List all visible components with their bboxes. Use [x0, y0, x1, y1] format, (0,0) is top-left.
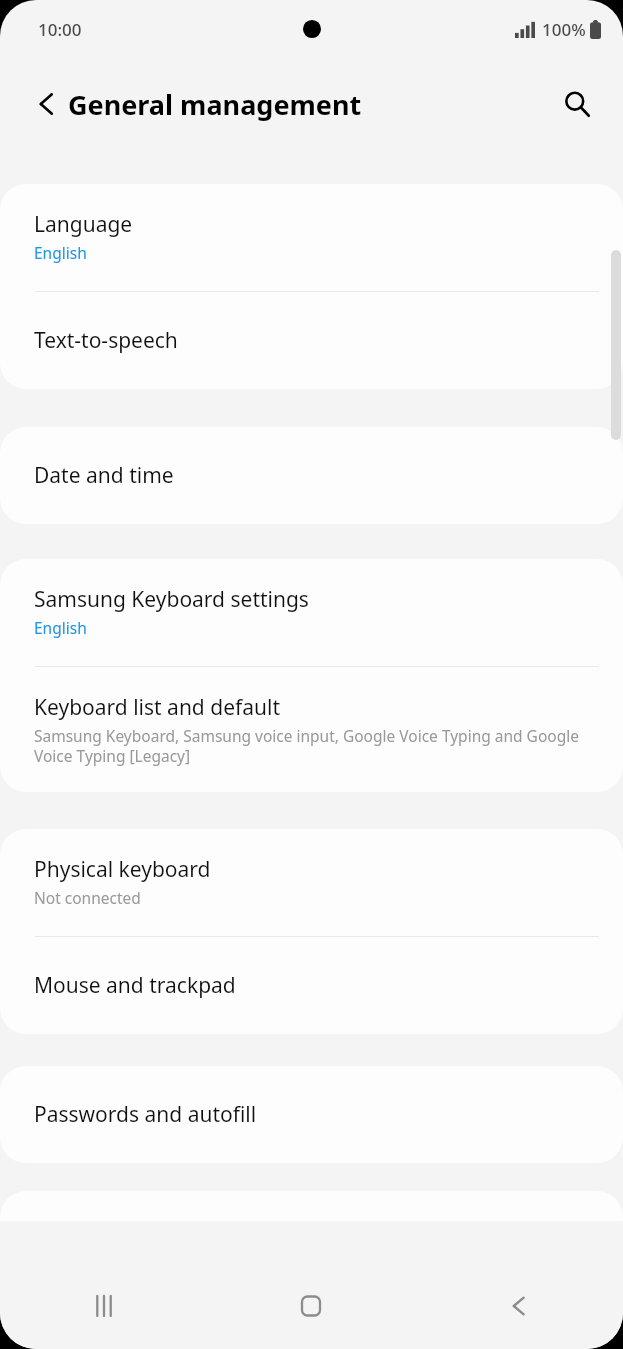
staticText: English: [34, 242, 87, 263]
button[interactable]: Search: [553, 80, 601, 128]
button[interactable]: Date and time: [0, 427, 623, 524]
button[interactable]: Physical keyboard: [0, 829, 623, 936]
button[interactable]: Samsung Keyboard settings: [0, 559, 623, 666]
button[interactable]: Language: [0, 184, 623, 291]
staticText: Not connected: [34, 887, 141, 908]
staticText: Keyboard list and default: [34, 693, 280, 722]
button[interactable]: Home: [207, 1263, 415, 1349]
staticText: 10:00: [38, 18, 82, 41]
staticText: Language: [34, 210, 133, 239]
staticText: English: [34, 617, 87, 638]
staticText: Date and time: [34, 461, 174, 490]
staticText: Samsung Keyboard, Samsung voice input, G…: [34, 725, 593, 766]
button[interactable]: Keyboard list and default: [0, 667, 623, 792]
staticText: 100%: [542, 18, 586, 41]
button[interactable]: Passwords and autofill: [0, 1066, 623, 1163]
staticText: Text-to-speech: [34, 326, 178, 355]
staticText: Mouse and trackpad: [34, 971, 236, 1000]
button[interactable]: Recent apps: [0, 1263, 207, 1349]
staticText: Physical keyboard: [34, 855, 211, 884]
staticText: Passwords and autofill: [34, 1100, 257, 1129]
button[interactable]: Back: [24, 81, 70, 127]
staticText: Samsung Keyboard settings: [34, 585, 309, 614]
button[interactable]: Text-to-speech: [0, 292, 623, 389]
button[interactable]: Mouse and trackpad: [0, 937, 623, 1034]
staticText: General management: [68, 86, 362, 123]
button[interactable]: Back: [415, 1263, 623, 1349]
